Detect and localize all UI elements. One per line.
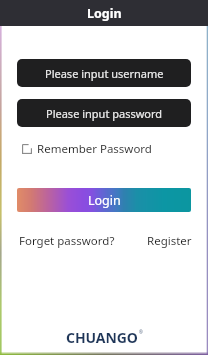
button[interactable]: Please input username [17, 59, 191, 87]
button[interactable]: Please input password [17, 99, 191, 127]
button[interactable]: Login [17, 188, 191, 212]
staticText: Remember Password [37, 141, 152, 157]
staticText: Forget password? [19, 233, 115, 249]
button[interactable]: Register [147, 233, 192, 249]
staticText: Please input password [46, 106, 163, 121]
staticText: Please input username [45, 66, 164, 81]
button[interactable]: Forget password? [19, 233, 115, 249]
button[interactable]: Remember Password [22, 141, 152, 157]
staticText: Login [87, 5, 122, 22]
staticText: Register [147, 233, 192, 249]
staticText: Login [88, 192, 121, 209]
staticText: ® [139, 329, 143, 335]
staticText: CHUANGO [66, 328, 138, 347]
